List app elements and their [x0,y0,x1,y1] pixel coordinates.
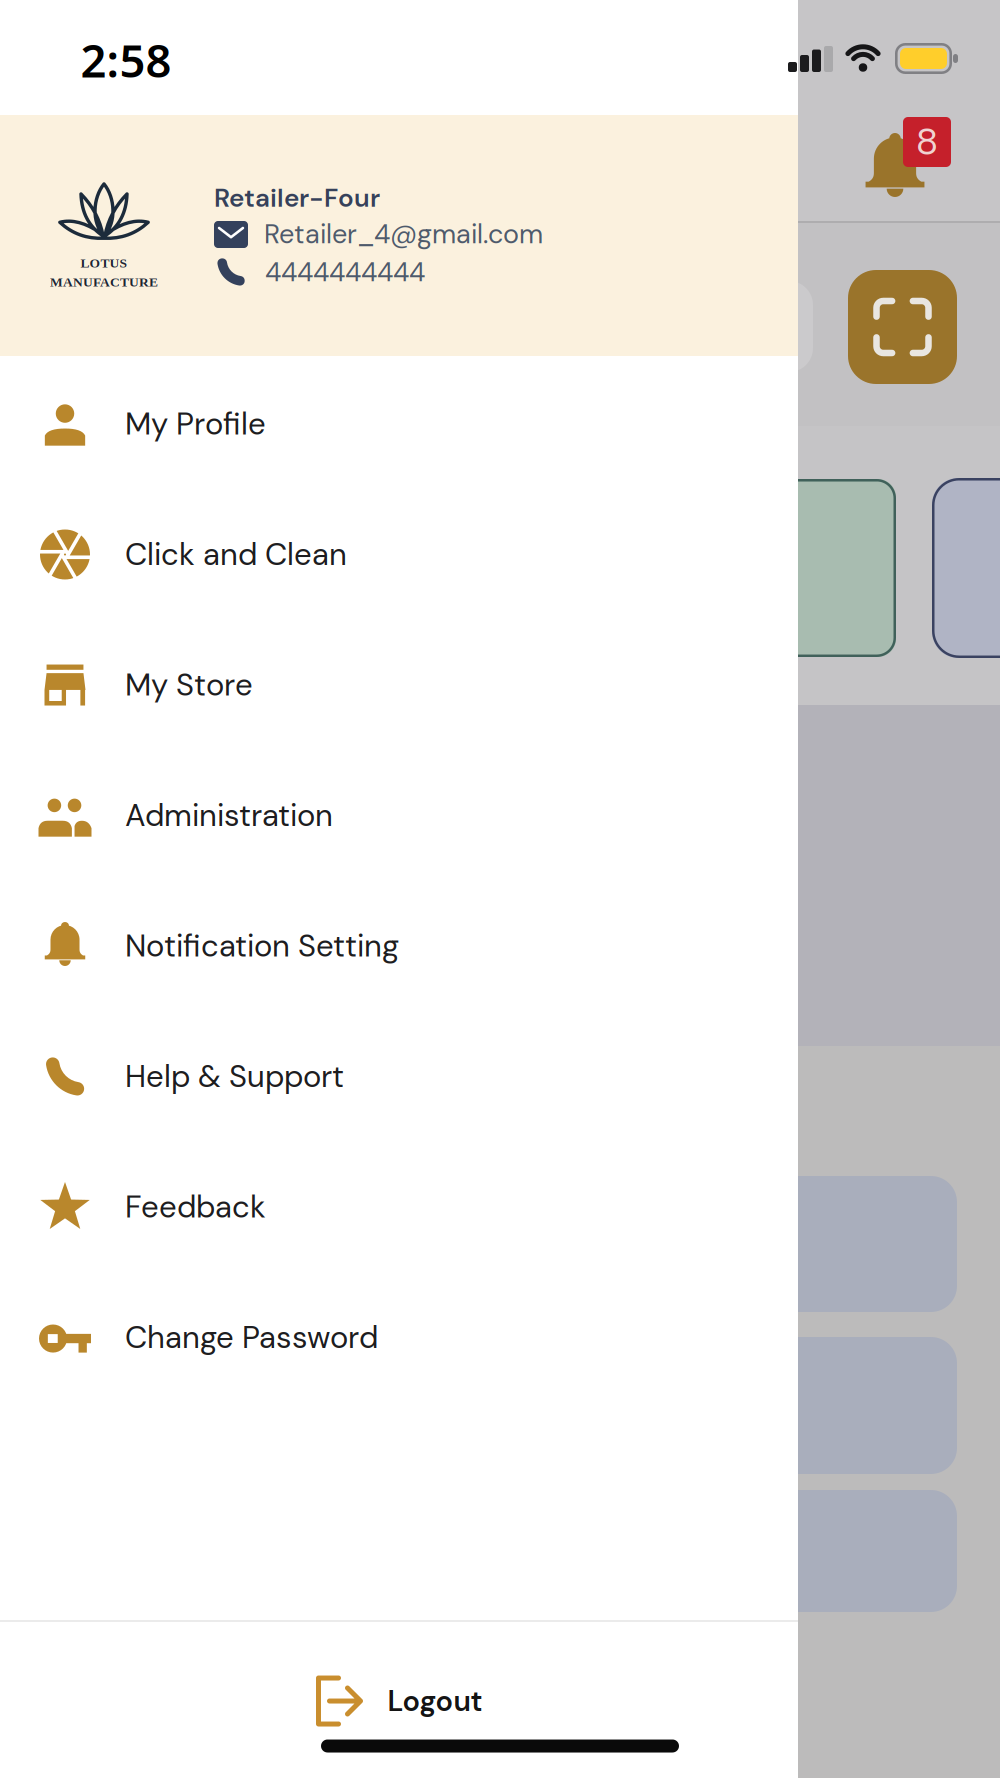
staticText: Administration [125,795,333,836]
button[interactable]: Notifications [861,110,961,210]
staticText: MANUFACTURE [50,274,158,289]
button[interactable]: Feedback [0,1152,798,1262]
staticText: 8 [916,118,938,166]
staticText: Retailer_4@gmail.com [264,216,543,252]
button[interactable]: My Store [0,630,798,740]
button[interactable]: Help & Support [0,1021,798,1131]
staticText: Logout [387,1682,482,1720]
staticText: Retailer-Four [214,181,380,215]
staticText: 4444444444 [265,254,425,290]
button[interactable]: Logout [219,1656,579,1746]
button[interactable]: My Profile [0,369,798,479]
staticText: LOTUS [80,255,127,270]
button[interactable]: Click and Clean [0,499,798,609]
staticText: Click and Clean [125,534,347,575]
button[interactable]: Home [321,1739,679,1752]
button[interactable]: Change Password [0,1282,798,1392]
staticText: My Profile [125,404,266,444]
button[interactable]: Notification Setting [0,891,798,1001]
staticText: Help & Support [125,1056,344,1097]
staticText: 2:58 [80,30,171,90]
button[interactable]: Administration [0,760,798,870]
button[interactable]: Scan [848,270,957,384]
staticText: My Store [125,665,253,705]
staticText: Feedback [125,1187,266,1227]
staticText: Notification Setting [125,926,399,966]
staticText: Change Password [125,1317,378,1358]
